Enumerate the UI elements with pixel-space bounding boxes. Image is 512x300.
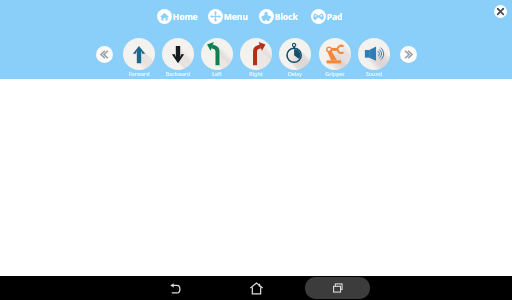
button[interactable]: Close [494,5,507,18]
button[interactable]: Home [250,282,263,295]
staticText: Left [192,70,242,77]
staticText: Forward [114,70,164,77]
button[interactable] [279,38,311,70]
button[interactable] [358,38,390,70]
button[interactable]: Pad [311,8,343,24]
button[interactable] [162,38,194,70]
staticText: Pad [327,11,343,22]
staticText: Right [231,70,281,77]
staticText: Menu [224,11,248,22]
button[interactable]: Back [170,283,181,294]
button[interactable]: Next page [400,46,417,63]
button[interactable]: Menu [208,8,248,24]
button[interactable]: Recents [305,277,370,299]
button[interactable]: Previous page [96,46,113,63]
button[interactable] [123,38,155,70]
button[interactable] [201,38,233,70]
button[interactable]: Home [157,8,198,24]
staticText: Home [173,11,198,22]
staticText: Sound [349,70,399,77]
staticText: Gripper [310,70,360,77]
button[interactable]: Block [259,8,298,24]
button[interactable] [240,38,272,70]
staticText: Backward [153,70,203,77]
staticText: Block [275,11,298,22]
button[interactable] [319,38,351,70]
staticText: Delay [270,70,320,77]
